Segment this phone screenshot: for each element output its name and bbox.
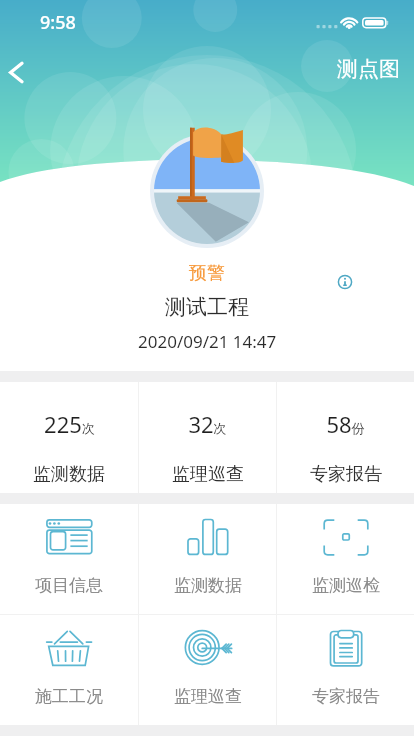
staticText: 监测巡检	[312, 575, 380, 596]
button[interactable]: Info	[331, 268, 359, 296]
button[interactable]: 32次	[139, 382, 276, 493]
button[interactable]: 监测巡检	[277, 504, 414, 614]
button[interactable]: 225次	[0, 382, 138, 493]
button[interactable]: 监测数据	[139, 504, 276, 614]
staticText: 专家报告	[310, 463, 382, 486]
staticText: 监测数据	[33, 463, 105, 486]
staticText: 监理巡查	[172, 463, 244, 486]
button[interactable]: 58份	[277, 382, 414, 493]
staticText: 专家报告	[312, 686, 380, 707]
button[interactable]: 项目信息	[0, 504, 138, 614]
button[interactable]: 施工工况	[0, 615, 138, 725]
staticText: 测试工程	[165, 294, 249, 320]
button[interactable]: 专家报告	[277, 615, 414, 725]
staticText: 58份	[326, 409, 365, 439]
staticText: 测点图	[337, 56, 400, 82]
staticText: 监理巡查	[174, 686, 242, 707]
staticText: 预警	[189, 262, 225, 285]
staticText: 2020/09/21 14:47	[138, 330, 277, 353]
button[interactable]: Back	[0, 49, 40, 89]
staticText: 225次	[44, 409, 95, 439]
staticText: 监测数据	[174, 575, 242, 596]
staticText: 32次	[188, 409, 227, 439]
staticText: 施工工况	[35, 686, 103, 707]
button[interactable]: 监理巡查	[139, 615, 276, 725]
staticText: 9:58	[40, 10, 76, 35]
staticText: 项目信息	[35, 575, 103, 596]
